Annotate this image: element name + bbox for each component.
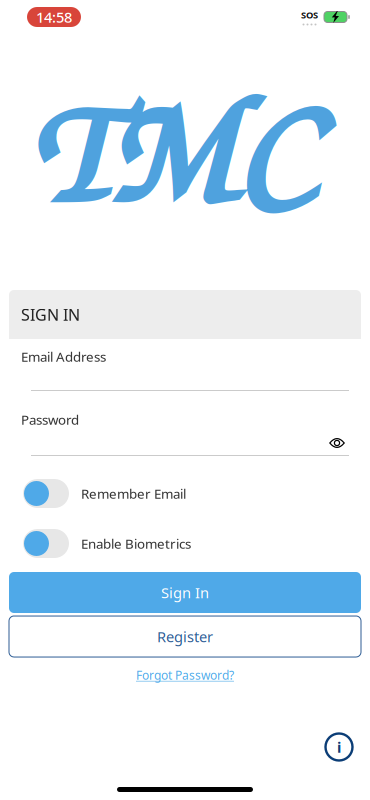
button[interactable]: Forgot Password? [136, 666, 234, 684]
staticText: SOS [301, 9, 318, 21]
staticText: Remember Email [81, 485, 186, 502]
staticText: Forgot Password? [136, 667, 234, 683]
button[interactable]: Remember Email [9, 479, 361, 508]
staticText: Sign In [161, 583, 209, 602]
button[interactable]: Register [9, 616, 361, 657]
staticText: Email Address [21, 348, 106, 365]
staticText: 14:58 [36, 7, 72, 27]
button[interactable]: Information [324, 732, 354, 762]
staticText: TMC [29, 46, 312, 246]
staticText: SIGN IN [21, 304, 80, 325]
staticText: Register [157, 627, 213, 646]
button[interactable]: Show password [322, 434, 352, 452]
button[interactable]: Sign In [9, 572, 361, 613]
staticText: i [337, 737, 341, 757]
staticText: Password [21, 411, 79, 428]
button[interactable]: Enable Biometrics [9, 529, 361, 558]
staticText: Enable Biometrics [81, 535, 191, 552]
